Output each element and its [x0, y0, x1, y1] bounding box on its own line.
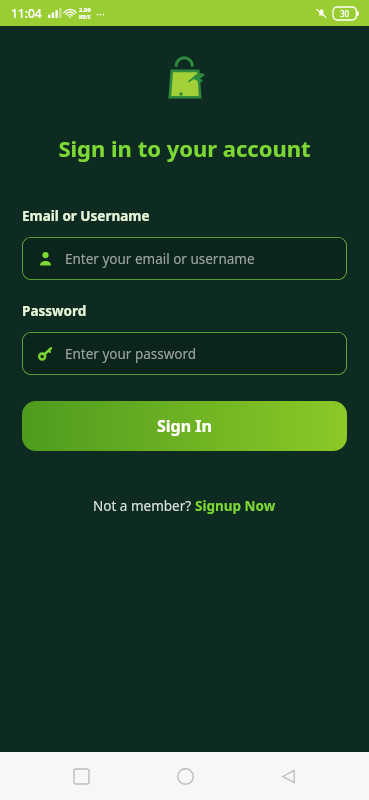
staticText: Sign in to your account — [58, 133, 311, 163]
staticText: Sign In — [157, 415, 212, 437]
button[interactable]: Enter your email or username — [22, 237, 347, 280]
staticText: Email or Username — [22, 207, 150, 225]
staticText: 11:04 — [11, 5, 42, 21]
staticText: Enter your password — [65, 345, 197, 363]
button[interactable]: Back — [265, 753, 311, 799]
button[interactable]: Signup Now — [195, 497, 276, 515]
staticText: 2.00 — [79, 6, 91, 14]
staticText: 30 — [340, 8, 350, 19]
staticText: Enter your email or username — [65, 250, 255, 268]
staticText: KB/S — [79, 14, 91, 21]
button[interactable]: Recent apps — [58, 753, 104, 799]
button[interactable]: Enter your password — [22, 332, 347, 375]
button[interactable]: Sign In — [22, 401, 347, 451]
staticText: Signup Now — [195, 497, 276, 515]
button[interactable]: Home — [162, 753, 208, 799]
staticText: Password — [22, 302, 87, 320]
staticText: Not a member? — [93, 497, 195, 515]
staticText: ··· — [96, 6, 105, 21]
